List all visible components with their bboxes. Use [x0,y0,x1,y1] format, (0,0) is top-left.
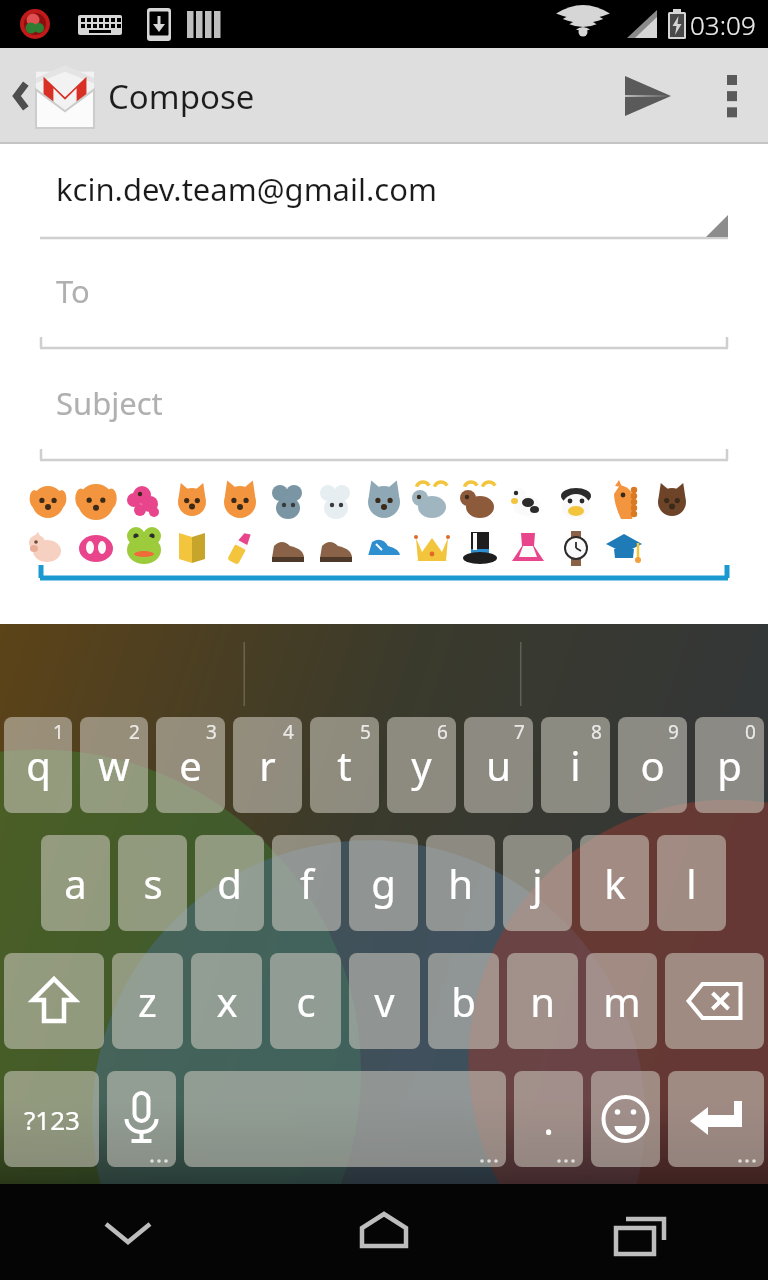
staticText: 1 [53,719,64,745]
button[interactable]: ?123 [4,1071,99,1167]
button[interactable]: Delete [665,953,764,1049]
button[interactable]: y [387,717,456,813]
button[interactable]: v [349,953,420,1049]
staticText: r [259,738,276,792]
button[interactable]: k [580,835,649,931]
button[interactable]: e [156,717,225,813]
staticText: v [374,974,395,1028]
button[interactable]: w [80,717,148,813]
staticText: h [448,856,473,910]
staticText: 8 [591,719,602,745]
button[interactable]: i [541,717,610,813]
staticText: 0 [745,719,756,745]
button[interactable]: x [191,953,262,1049]
button[interactable]: Back [0,1184,256,1280]
staticText: 2 [129,719,140,745]
staticText: 9 [668,719,679,745]
button[interactable]: Recent apps [512,1184,768,1280]
staticText: g [371,856,396,910]
button[interactable]: Subject [0,352,768,464]
other: Navigate up [10,74,32,118]
button[interactable]: s [118,835,187,931]
staticText: j [532,856,543,910]
staticText: To [56,270,90,312]
button[interactable]: f [272,835,341,931]
staticText: 5 [360,719,371,745]
staticText: q [26,738,51,792]
button[interactable]: Shift [4,953,104,1049]
button[interactable]: u [464,717,533,813]
staticText: l [686,856,697,910]
button[interactable]: More options [696,48,768,144]
staticText: m [603,974,641,1028]
staticText: y [411,738,432,792]
button[interactable]: Send [600,48,696,144]
button[interactable]: g [349,835,418,931]
staticText: 4 [283,719,294,745]
staticText: . [543,1092,554,1146]
button[interactable] [0,464,768,584]
button[interactable]: o [618,717,687,813]
button[interactable]: Emoji [591,1071,660,1167]
button[interactable]: Navigate up [6,48,263,144]
button[interactable]: q [4,717,72,813]
staticText: e [179,738,202,792]
staticText: i [570,738,581,792]
button[interactable]: h [426,835,495,931]
button[interactable]: Enter [668,1071,764,1167]
staticText: Subject [56,382,163,424]
staticText: 03:09 [690,7,756,42]
button[interactable]: z [112,953,183,1049]
button[interactable]: Voice input [107,1071,176,1167]
staticText: d [217,856,242,910]
button[interactable]: a [41,835,110,931]
staticText: u [486,738,511,792]
staticText: 3 [206,719,217,745]
button[interactable]: Space [184,1071,506,1167]
button[interactable]: To [0,240,768,352]
button[interactable]: l [657,835,726,931]
button[interactable]: t [310,717,379,813]
staticText: p [717,738,742,792]
staticText: a [64,856,87,910]
staticText: s [143,856,163,910]
button[interactable]: . [514,1071,583,1167]
staticText: ?123 [24,1102,80,1137]
staticText: x [216,974,238,1028]
staticText: z [138,974,157,1028]
staticText: k [604,856,626,910]
button[interactable]: n [507,953,578,1049]
staticText: t [337,738,352,792]
button[interactable]: d [195,835,264,931]
staticText: Compose [108,74,255,119]
button[interactable]: b [428,953,499,1049]
button[interactable]: kcin.dev.team@gmail.com [0,144,768,240]
staticText: o [640,738,665,792]
button[interactable]: m [586,953,657,1049]
button[interactable]: r [233,717,302,813]
button[interactable]: p [695,717,764,813]
staticText: 6 [437,719,448,745]
button[interactable]: c [270,953,341,1049]
staticText: kcin.dev.team@gmail.com [56,168,437,210]
staticText: b [451,974,476,1028]
staticText: 7 [514,719,525,745]
staticText: w [98,738,130,792]
staticText: n [530,974,555,1028]
staticText: c [296,974,316,1028]
staticText: f [300,856,314,910]
button[interactable]: j [503,835,572,931]
button[interactable]: Home [256,1184,512,1280]
